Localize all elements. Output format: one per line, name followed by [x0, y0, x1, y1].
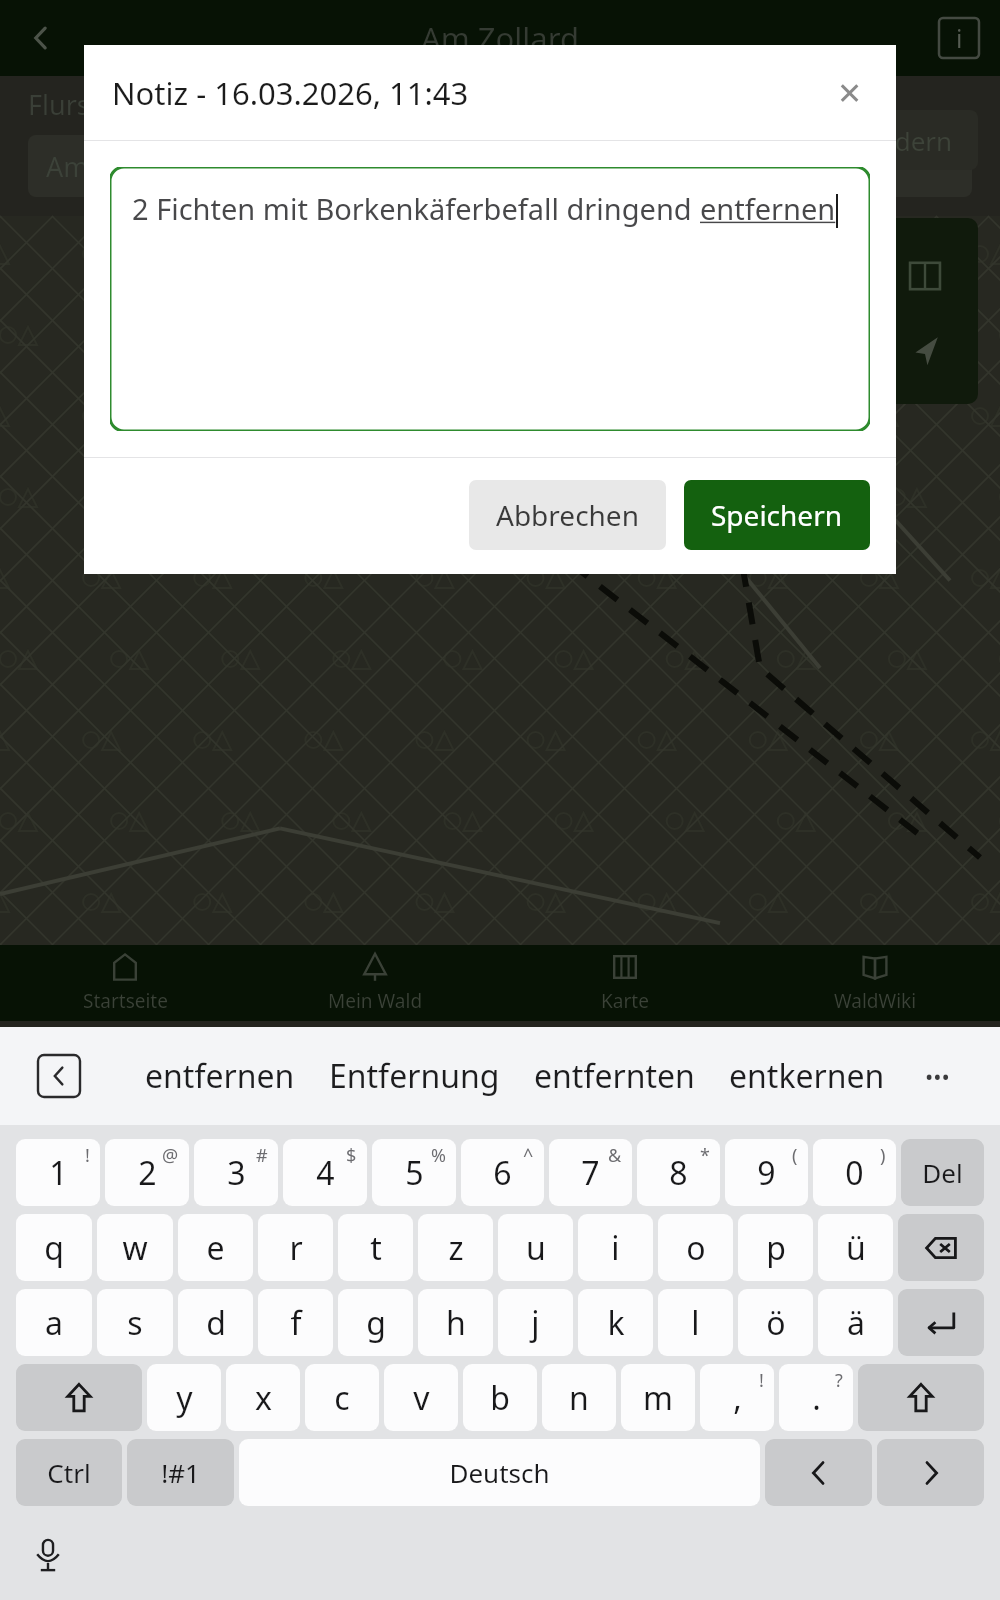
button[interactable]: k	[578, 1289, 653, 1356]
staticText: ?	[835, 1368, 843, 1393]
button[interactable]: x	[226, 1364, 300, 1431]
button[interactable]: Del	[901, 1139, 984, 1206]
button[interactable]: p	[738, 1214, 813, 1281]
button[interactable]: Ctrl	[16, 1439, 122, 1506]
button[interactable]: 7	[549, 1139, 632, 1206]
button[interactable]: Karte	[500, 945, 750, 1021]
button[interactable]: Right	[877, 1439, 984, 1506]
button[interactable]: z	[418, 1214, 493, 1281]
button[interactable]: s	[97, 1289, 173, 1356]
button[interactable]: e	[178, 1214, 253, 1281]
staticText: #	[256, 1143, 268, 1168]
staticText: w	[122, 1226, 148, 1270]
button[interactable]: Abbrechen	[469, 480, 666, 550]
staticText: i	[611, 1226, 620, 1270]
button[interactable]: ü	[818, 1214, 893, 1281]
button[interactable]: 2	[105, 1139, 189, 1206]
staticText: n	[569, 1376, 589, 1420]
staticText: e	[206, 1226, 225, 1270]
button[interactable]: g	[338, 1289, 413, 1356]
button[interactable]: Deutsch	[239, 1439, 760, 1506]
button[interactable]: 9	[725, 1139, 808, 1206]
staticText: •••	[925, 1061, 950, 1091]
button[interactable]: 8	[637, 1139, 720, 1206]
staticText: q	[44, 1226, 64, 1270]
button[interactable]: Mein Wald	[250, 945, 500, 1021]
staticText: Notiz - 16.03.2026, 11:43	[112, 72, 469, 114]
button[interactable]: h	[418, 1289, 493, 1356]
staticText: ^	[523, 1143, 534, 1168]
button[interactable]: ,	[700, 1364, 774, 1431]
staticText: Abbrechen	[496, 496, 639, 534]
staticText: o	[686, 1226, 706, 1270]
staticText: 7	[581, 1151, 600, 1195]
staticText: 9	[757, 1151, 776, 1195]
staticText: !	[759, 1368, 764, 1393]
staticText: f	[290, 1301, 302, 1345]
button[interactable]: b	[463, 1364, 537, 1431]
button[interactable]: Collapse suggestions	[36, 1053, 82, 1099]
button[interactable]: j	[498, 1289, 573, 1356]
button[interactable]: WaldWiki	[750, 945, 1000, 1021]
button[interactable]: Locate me	[899, 324, 951, 376]
button[interactable]: 3	[194, 1139, 278, 1206]
button[interactable]: Speichern	[684, 480, 870, 550]
staticText: j	[531, 1301, 540, 1345]
button[interactable]: 0	[813, 1139, 896, 1206]
staticText: 2	[138, 1151, 157, 1195]
button[interactable]: Shift	[16, 1364, 142, 1431]
button[interactable]: w	[97, 1214, 173, 1281]
button[interactable]: 1	[16, 1139, 100, 1206]
button[interactable]: Startseite	[0, 945, 250, 1021]
button[interactable]: .	[779, 1364, 853, 1431]
button[interactable]: u	[498, 1214, 573, 1281]
button[interactable]: Back	[14, 11, 68, 65]
staticText: a	[45, 1301, 63, 1345]
button[interactable]: f	[258, 1289, 333, 1356]
button[interactable]: 5	[372, 1139, 456, 1206]
button[interactable]: m	[621, 1364, 695, 1431]
button[interactable]: Backspace	[898, 1214, 984, 1281]
staticText: %	[431, 1143, 446, 1168]
button[interactable]: i	[578, 1214, 653, 1281]
button[interactable]: r	[258, 1214, 333, 1281]
button[interactable]: q	[16, 1214, 92, 1281]
button[interactable]: Close	[826, 69, 874, 117]
button[interactable]: Enter	[898, 1289, 984, 1356]
button[interactable]: entfernten	[517, 1046, 712, 1106]
button[interactable]: Left	[765, 1439, 872, 1506]
button[interactable]: a	[16, 1289, 92, 1356]
button[interactable]: n	[542, 1364, 616, 1431]
staticText: b	[490, 1376, 510, 1420]
button[interactable]: entkernen	[712, 1046, 902, 1106]
staticText: 6	[493, 1151, 512, 1195]
staticText: Zum Auftrag	[28, 211, 182, 246]
button[interactable]: More suggestions	[914, 1053, 960, 1099]
button[interactable]: Entfernung	[312, 1046, 517, 1106]
staticText: Am Zollard	[421, 17, 579, 59]
button[interactable]: entfernen	[128, 1046, 312, 1106]
button[interactable]: Layers	[899, 250, 951, 302]
staticText: Startseite	[83, 988, 168, 1014]
button[interactable]: !#1	[127, 1439, 234, 1506]
button[interactable]: Shift	[858, 1364, 984, 1431]
button[interactable]: v	[384, 1364, 458, 1431]
button[interactable]: ä	[818, 1289, 893, 1356]
staticText: ö	[766, 1301, 786, 1345]
button[interactable]: 4	[283, 1139, 367, 1206]
staticText: !#1	[161, 1455, 200, 1490]
staticText: y	[176, 1376, 193, 1420]
button[interactable]: l	[658, 1289, 733, 1356]
button[interactable]: t	[338, 1214, 413, 1281]
button[interactable]: c	[305, 1364, 379, 1431]
button[interactable]: Info	[936, 15, 982, 61]
button[interactable]: y	[147, 1364, 221, 1431]
staticText: WaldWiki	[834, 988, 917, 1014]
button[interactable]: d	[178, 1289, 253, 1356]
button[interactable]: 6	[461, 1139, 544, 1206]
staticText: *	[700, 1143, 710, 1168]
staticText: i	[956, 21, 963, 55]
button[interactable]: Voice input	[22, 1529, 74, 1581]
button[interactable]: ö	[738, 1289, 813, 1356]
button[interactable]: o	[658, 1214, 733, 1281]
